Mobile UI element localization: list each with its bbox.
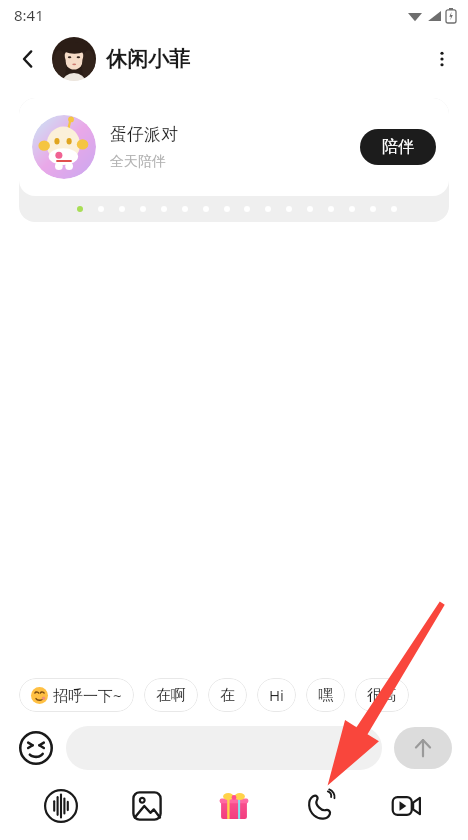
staticText: 招呼一下~	[53, 685, 122, 705]
button[interactable]: Send	[394, 727, 452, 769]
button[interactable]: Photo	[121, 780, 173, 832]
button[interactable]: 在啊	[144, 678, 198, 712]
button[interactable]: Emoji	[16, 728, 56, 768]
staticText: 休闲小菲	[106, 46, 190, 72]
button[interactable]: More options	[422, 39, 462, 79]
button[interactable]: 休闲小菲	[52, 37, 190, 81]
button[interactable]: Voice call	[295, 780, 347, 832]
staticText: Hi	[269, 685, 284, 705]
button[interactable]: 很高	[355, 678, 409, 712]
staticText: 在啊	[156, 686, 186, 705]
button[interactable]: 蛋仔派对	[19, 98, 449, 196]
button[interactable]: 陪伴	[360, 129, 436, 165]
button[interactable]: Hi	[257, 678, 296, 712]
button[interactable]: 在	[208, 678, 247, 712]
button[interactable]: Gift	[208, 780, 260, 832]
button[interactable]: 招呼一下~	[19, 678, 134, 712]
staticText: 8:41	[14, 5, 44, 25]
button[interactable]: Video call	[381, 780, 433, 832]
button[interactable]: Back	[8, 39, 48, 79]
staticText: 很高	[367, 686, 397, 705]
staticText: 蛋仔派对	[110, 124, 178, 145]
button[interactable]: Voice message	[35, 780, 87, 832]
button[interactable]	[66, 726, 382, 770]
staticText: 嘿	[318, 686, 333, 705]
staticText: 全天陪伴	[110, 153, 166, 171]
staticText: 在	[220, 686, 235, 705]
staticText: 陪伴	[382, 137, 414, 157]
button[interactable]: 嘿	[306, 678, 345, 712]
